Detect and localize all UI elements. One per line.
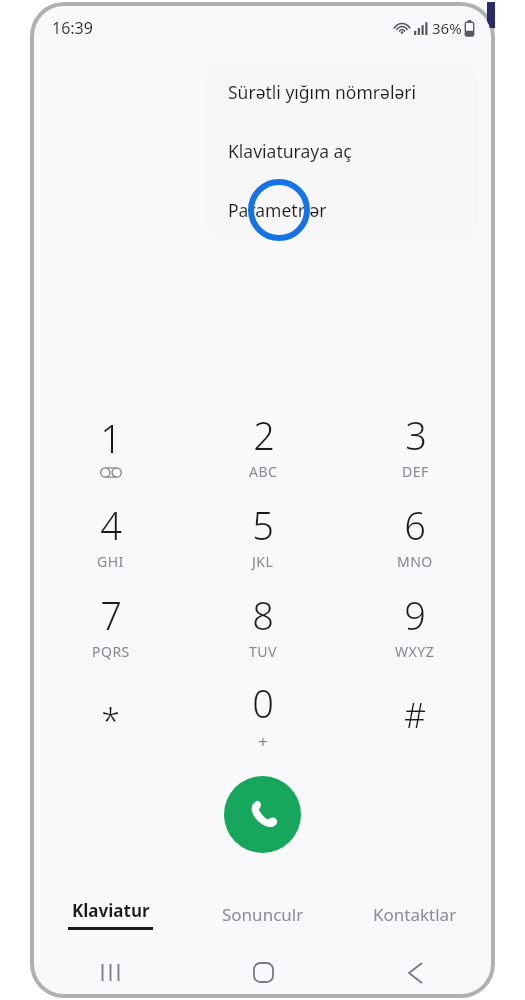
staticText: + [258, 730, 269, 753]
staticText: # [404, 692, 426, 738]
staticText: WXYZ [395, 642, 435, 661]
staticText: JKL [252, 552, 274, 571]
button[interactable]: Parametrlər [203, 180, 478, 239]
staticText: GHI [97, 552, 124, 571]
staticText: 0 [252, 677, 274, 729]
staticText: * [101, 698, 120, 744]
button[interactable]: Sürətli yığım nömrələri [203, 62, 478, 121]
button[interactable]: Call [224, 776, 301, 853]
button[interactable]: 4 [34, 490, 187, 580]
button[interactable]: 1 [34, 400, 187, 490]
staticText: DEF [402, 462, 429, 481]
button[interactable]: # [339, 670, 491, 760]
staticText: Parametrlər [228, 198, 327, 222]
staticText: 9 [404, 589, 426, 641]
staticText: 8 [252, 589, 274, 641]
staticText: 36% [432, 18, 462, 38]
button[interactable]: 9 [339, 580, 491, 670]
staticText: 5 [252, 499, 274, 551]
button[interactable]: 8 [187, 580, 339, 670]
button[interactable]: * [34, 670, 187, 760]
staticText: 4 [100, 499, 122, 551]
staticText: MNO [397, 552, 433, 571]
staticText: Klaviatur [72, 899, 150, 922]
button[interactable]: Sonunculr [187, 888, 339, 940]
staticText: Sonunculr [222, 903, 304, 926]
staticText: 6 [404, 499, 426, 551]
staticText: 3 [405, 409, 427, 461]
staticText: 7 [100, 589, 122, 641]
staticText: 1 [100, 412, 122, 464]
staticText: PQRS [92, 642, 130, 661]
staticText: 2 [253, 409, 275, 461]
staticText: TUV [249, 642, 277, 661]
button[interactable]: Klaviaturaya aç [203, 121, 478, 180]
button[interactable]: 7 [34, 580, 187, 670]
button[interactable]: 5 [187, 490, 339, 580]
button[interactable]: Back [339, 951, 491, 994]
button[interactable]: Home [187, 951, 339, 994]
button[interactable]: 0 [187, 670, 339, 760]
button[interactable]: 3 [339, 400, 491, 490]
staticText: Kontaktlar [373, 903, 457, 926]
staticText: 16:39 [52, 17, 93, 39]
button[interactable]: Klaviatur [34, 888, 187, 940]
button[interactable]: 2 [187, 400, 339, 490]
button[interactable]: Kontaktlar [339, 888, 491, 940]
staticText: ABC [249, 462, 278, 481]
button[interactable]: 6 [339, 490, 491, 580]
button[interactable]: Recents [34, 951, 187, 994]
staticText: Sürətli yığım nömrələri [228, 80, 417, 104]
staticText: Klaviaturaya aç [228, 139, 352, 163]
